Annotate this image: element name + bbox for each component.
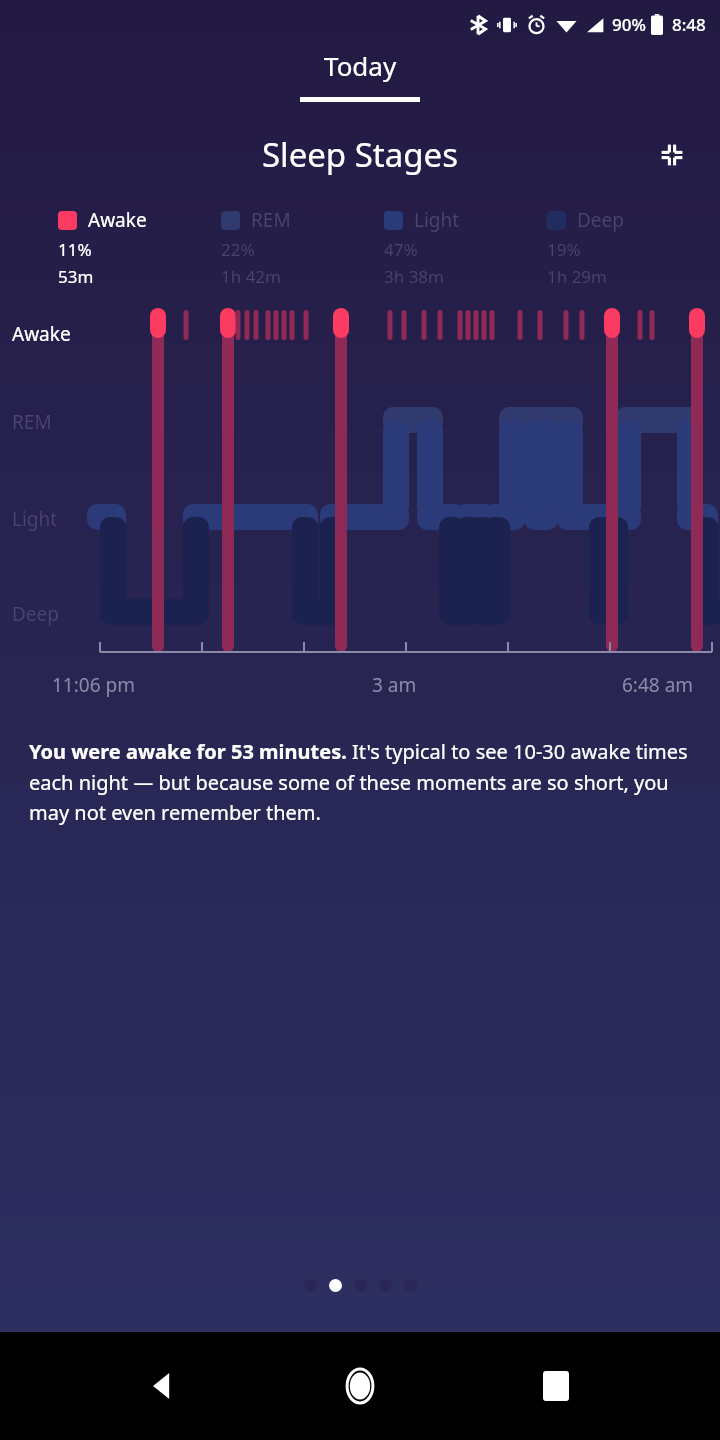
button[interactable]: Collapse chart [650,133,694,177]
staticText: 19% [547,238,581,261]
staticText: Awake [88,207,147,233]
staticText: REM [12,409,52,435]
button[interactable]: Deep [547,207,710,288]
button[interactable]: Today [0,48,720,102]
staticText: 90% [612,13,646,36]
staticText: Awake [12,321,71,347]
staticText: You were awake for 53 minutes. It's typi… [29,738,702,825]
staticText: Light [414,207,460,233]
staticText: 47% [384,238,418,261]
button[interactable]: Page 5 [404,1279,417,1292]
staticText: 6:48 am [622,672,694,698]
staticText: 3h 38m [384,265,444,288]
staticText: Sleep Stages [262,132,458,177]
staticText: 22% [221,238,255,261]
button[interactable]: Page 3 [354,1279,367,1292]
staticText: Light [12,506,58,532]
staticText: 11:06 pm [52,672,135,698]
staticText: Deep [12,601,59,627]
button[interactable]: Recent apps [524,1354,588,1418]
button[interactable]: Awake [58,207,221,288]
button[interactable]: Light [384,207,547,288]
staticText: 3 am [372,672,417,698]
staticText: 1h 29m [547,265,607,288]
button[interactable]: Home [328,1354,392,1418]
staticText: 53m [58,265,94,288]
button[interactable]: Page 4 [379,1279,392,1292]
staticText: Deep [577,207,624,233]
staticText: 8:48 [672,13,706,36]
staticText: REM [251,207,291,233]
staticText: 11% [58,238,92,261]
staticText: Today [324,48,397,83]
button[interactable]: Page 2 [329,1279,342,1292]
button[interactable]: Back [132,1354,196,1418]
button[interactable]: Page 1 [304,1279,317,1292]
button[interactable] [0,312,720,722]
button[interactable]: REM [221,207,384,288]
staticText: 1h 42m [221,265,281,288]
